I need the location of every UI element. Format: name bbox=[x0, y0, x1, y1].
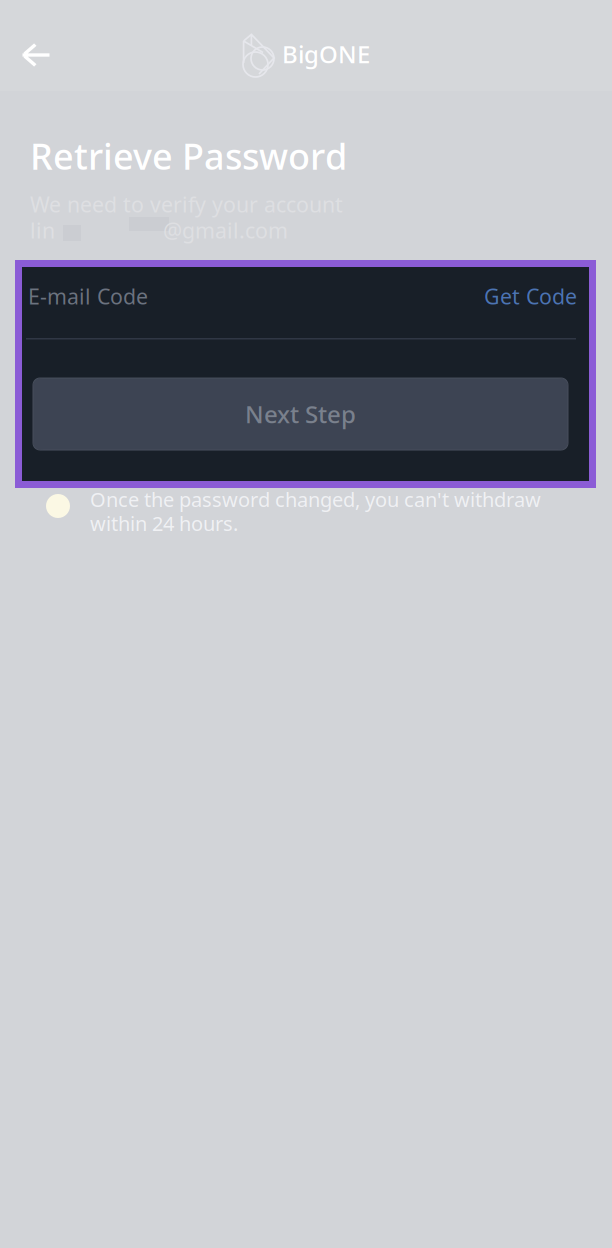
staticText: Once the password changed, you can't wit… bbox=[90, 486, 541, 513]
staticText: We need to verify your account bbox=[30, 190, 343, 218]
staticText: E-mail Code bbox=[28, 282, 148, 310]
staticText: within 24 hours. bbox=[90, 510, 238, 537]
staticText: Retrieve Password bbox=[30, 132, 347, 180]
staticText: @gmail.com bbox=[163, 216, 288, 244]
button[interactable]: Back bbox=[4, 25, 68, 85]
staticText: Next Step bbox=[245, 398, 356, 430]
staticText: Get Code bbox=[484, 282, 577, 310]
button[interactable]: Next Step bbox=[33, 378, 568, 450]
staticText: BigONE bbox=[282, 38, 370, 70]
button[interactable]: Get Code bbox=[470, 270, 591, 322]
staticText: lin bbox=[30, 216, 55, 244]
